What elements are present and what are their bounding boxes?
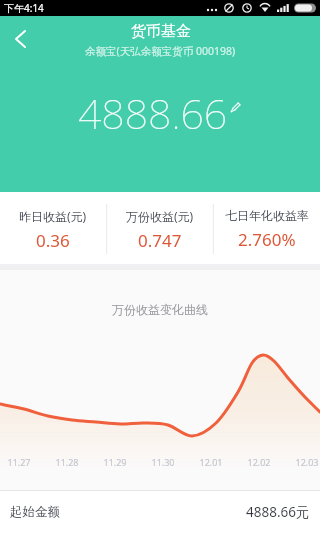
staticText: 12.01 xyxy=(197,456,225,468)
staticText: 0.747 xyxy=(138,229,182,252)
staticText: 0.36 xyxy=(36,229,70,252)
staticText: 12.02 xyxy=(245,456,273,468)
staticText: 七日年化收益率 xyxy=(225,208,309,223)
staticText: 货币基金 xyxy=(131,22,191,41)
staticText: 11.30 xyxy=(149,456,177,468)
button[interactable]: 七日年化收益率 xyxy=(213,192,320,264)
staticText: 2.760% xyxy=(238,228,296,251)
staticText: 昨日收益(元) xyxy=(19,208,87,224)
staticText: 11.27 xyxy=(5,456,33,468)
button[interactable]: 昨日收益(元) xyxy=(0,192,106,264)
staticText: 11.28 xyxy=(53,456,81,468)
staticText: 11.29 xyxy=(101,456,129,468)
button[interactable]: 万份收益(元) xyxy=(106,192,213,264)
staticText: 万份收益(元) xyxy=(126,208,194,224)
staticText: 万份收益变化曲线 xyxy=(112,302,208,317)
button[interactable]: 4888.66 xyxy=(78,85,242,141)
staticText: 下午4:14 xyxy=(4,1,44,15)
button[interactable]: 起始金额 xyxy=(0,491,320,533)
staticText: 12.03 xyxy=(293,456,320,468)
button[interactable] xyxy=(0,16,44,60)
staticText: 起始金额 xyxy=(10,504,60,520)
staticText: 余额宝(天弘余额宝货币 000198) xyxy=(85,44,236,58)
staticText: 4888.66 xyxy=(78,85,228,141)
staticText: 4888.66元 xyxy=(246,503,310,521)
